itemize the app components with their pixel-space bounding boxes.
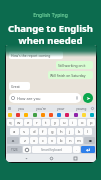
button[interactable]: More options — [91, 107, 94, 110]
staticText: t — [45, 120, 47, 126]
button[interactable]: Backspace — [84, 137, 95, 144]
button[interactable]: Recent apps — [72, 155, 79, 162]
button[interactable]: Emoji — [74, 113, 78, 117]
button[interactable]: r — [33, 119, 41, 126]
staticText: Will finish on Saturday — [50, 73, 86, 78]
button[interactable]: ?123 — [7, 146, 22, 153]
staticText: j — [69, 129, 71, 135]
staticText: h — [60, 129, 63, 135]
button[interactable]: f — [39, 128, 47, 135]
staticText: you're — [36, 106, 47, 111]
staticText: i — [72, 120, 74, 126]
staticText: v — [51, 138, 54, 144]
button[interactable]: . — [73, 146, 80, 153]
button[interactable]: v — [48, 137, 56, 144]
button[interactable]: Emoji — [16, 113, 20, 117]
staticText: Great — [11, 84, 20, 89]
staticText: How are you — [17, 96, 75, 101]
button[interactable]: How's the report coming along? — [9, 51, 63, 59]
button[interactable]: h — [57, 128, 65, 135]
button[interactable]: Smart Keyboard — [32, 146, 72, 153]
button[interactable]: p — [87, 119, 95, 126]
button[interactable]: Will finish on Saturday — [48, 71, 93, 79]
staticText: a — [13, 129, 16, 135]
button[interactable]: you — [11, 105, 31, 112]
button[interactable]: n — [66, 137, 74, 144]
button[interactable]: i — [69, 119, 77, 126]
button[interactable]: Emoji — [33, 113, 37, 117]
button[interactable]: you're — [31, 105, 51, 112]
staticText: young — [76, 106, 87, 111]
button[interactable]: o — [78, 119, 86, 126]
staticText: m — [77, 138, 81, 144]
button[interactable]: Hide keyboard — [23, 155, 30, 162]
button[interactable]: Emoji keyboard — [23, 146, 31, 153]
button[interactable]: Emoji — [24, 113, 28, 117]
staticText: Still working on it — [58, 63, 86, 68]
staticText: k — [78, 129, 81, 135]
staticText: f — [42, 129, 44, 135]
staticText: Smart Keyboard — [41, 148, 63, 152]
staticText: y — [54, 120, 57, 126]
staticText: d — [33, 129, 36, 135]
staticText: u — [63, 120, 66, 126]
button[interactable]: a — [10, 128, 19, 135]
button[interactable]: x — [30, 137, 38, 144]
button[interactable]: your — [51, 105, 71, 112]
button[interactable]: b — [57, 137, 65, 144]
staticText: c — [42, 138, 45, 144]
staticText: b — [60, 138, 63, 144]
button[interactable]: Emoji — [65, 113, 69, 117]
staticText: s — [23, 129, 26, 135]
button[interactable]: d — [30, 128, 38, 135]
button[interactable]: g — [48, 128, 56, 135]
button[interactable]: Still working on it — [56, 61, 93, 69]
button[interactable]: Emoji — [41, 113, 45, 117]
staticText: q — [9, 120, 12, 126]
button[interactable]: c — [39, 137, 47, 144]
staticText: Change to English when needed — [8, 22, 93, 47]
button[interactable]: q — [7, 119, 14, 126]
button[interactable]: Great — [9, 82, 30, 90]
button[interactable]: s — [20, 128, 29, 135]
button[interactable]: Shift — [7, 137, 19, 144]
button[interactable]: Emoji — [90, 113, 94, 117]
staticText: n — [69, 138, 72, 144]
staticText: ?123 — [11, 148, 18, 152]
staticText: you — [18, 106, 25, 111]
staticText: w — [17, 120, 21, 126]
button[interactable]: w — [15, 119, 23, 126]
button[interactable]: young — [71, 105, 91, 112]
staticText: your — [57, 106, 65, 111]
staticText: How's the report coming along? — [11, 53, 61, 58]
button[interactable]: m — [75, 137, 83, 144]
staticText: g — [51, 129, 54, 135]
staticText: x — [33, 138, 36, 144]
button[interactable]: Emoji — [49, 113, 53, 117]
other: Attach — [75, 96, 79, 100]
staticText: o — [81, 120, 84, 126]
button[interactable]: k — [75, 128, 83, 135]
button[interactable]: t — [42, 119, 50, 126]
staticText: z — [24, 138, 26, 144]
button[interactable]: Enter — [81, 146, 95, 153]
button[interactable]: Emoji — [57, 113, 61, 117]
button[interactable]: Send — [83, 93, 93, 103]
staticText: p — [90, 120, 93, 126]
button[interactable]: z — [20, 137, 29, 144]
staticText: r — [36, 120, 38, 126]
button[interactable]: Home — [48, 155, 55, 162]
button[interactable]: Emoji — [8, 113, 12, 117]
button[interactable]: How are you — [9, 93, 81, 103]
button[interactable]: e — [24, 119, 32, 126]
staticText: English Typing — [33, 12, 68, 19]
button[interactable]: l — [84, 128, 92, 135]
button[interactable]: j — [66, 128, 74, 135]
button[interactable]: Emoji — [82, 113, 86, 117]
staticText: . — [76, 147, 78, 152]
staticText: l — [87, 129, 89, 135]
button[interactable]: u — [60, 119, 68, 126]
button[interactable]: y — [51, 119, 59, 126]
staticText: e — [27, 120, 30, 126]
